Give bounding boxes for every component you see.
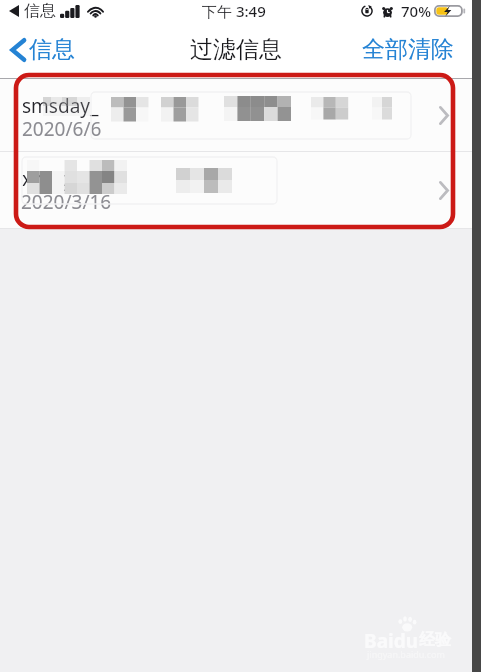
staticText: 经验: [419, 630, 451, 650]
staticText: 下午 3:49: [202, 1, 266, 21]
staticText: smsday_: [22, 93, 99, 119]
staticText: 2020/6/6: [22, 116, 102, 142]
button[interactable]: 信息: [0, 27, 85, 72]
button[interactable]: 全部清除: [348, 27, 472, 72]
staticText: 信息: [24, 1, 56, 21]
other: Open conversation: [439, 106, 449, 125]
staticText: xmsg: [22, 166, 71, 192]
staticText: Baidu: [364, 628, 419, 654]
staticText: 信息: [29, 35, 75, 64]
staticText: 2020/3/16: [21, 189, 112, 215]
other: Open conversation: [439, 181, 449, 200]
button[interactable]: xmsg: [0, 152, 472, 228]
staticText: 过滤信息: [190, 35, 282, 64]
button[interactable]: smsday_: [0, 79, 472, 151]
staticText: 70%: [401, 1, 431, 21]
staticText: 全部清除: [362, 35, 454, 64]
